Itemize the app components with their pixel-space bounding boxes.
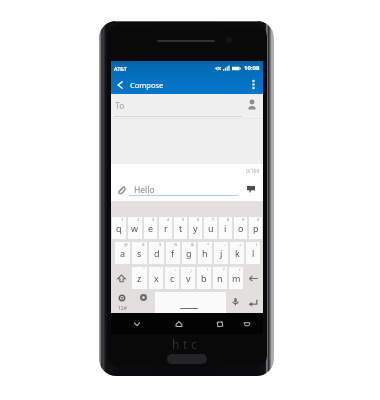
staticText: &	[191, 242, 194, 247]
staticText: w	[131, 222, 139, 234]
staticText: f	[171, 247, 175, 259]
staticText: -	[224, 242, 226, 247]
staticText: m	[232, 272, 241, 284]
button[interactable]: Hide keyboard	[238, 313, 256, 334]
staticText: *	[207, 242, 210, 247]
staticText: q	[116, 222, 122, 234]
staticText: Hello	[134, 184, 155, 196]
button[interactable]: e	[144, 217, 157, 239]
staticText: n	[217, 272, 223, 284]
staticText: 1	[121, 217, 124, 222]
staticText: 2	[137, 217, 140, 222]
staticText: c	[170, 272, 175, 284]
button[interactable]: f	[166, 242, 180, 264]
button[interactable]: Send message	[243, 181, 259, 197]
staticText: /	[239, 267, 241, 272]
staticText: +	[239, 242, 242, 247]
staticText: '	[160, 267, 161, 272]
button[interactable]: r	[159, 217, 172, 239]
staticText: 5	[182, 217, 185, 222]
button[interactable]: Settings	[134, 292, 153, 313]
staticText: "	[143, 267, 145, 272]
button[interactable]: t	[174, 217, 187, 239]
staticText: z	[137, 272, 142, 284]
staticText: 4	[167, 217, 170, 222]
staticText: 6	[197, 217, 200, 222]
button[interactable]: o	[234, 217, 247, 239]
staticText: :	[175, 267, 177, 272]
button[interactable]: Backspace	[245, 267, 262, 289]
staticText: u	[208, 222, 214, 234]
staticText: ?	[223, 267, 225, 272]
button[interactable]: c	[165, 267, 179, 289]
button[interactable]: Home button	[167, 354, 207, 364]
button[interactable]: y	[189, 217, 202, 239]
button[interactable]: j	[214, 242, 228, 264]
staticText: #	[142, 242, 145, 247]
staticText: To	[115, 100, 125, 112]
staticText: AT&T	[114, 65, 127, 72]
button[interactable]: q	[112, 217, 126, 239]
staticText: 8	[227, 217, 230, 222]
button[interactable]: Hide keyboard (back)	[128, 313, 146, 334]
staticText: p	[253, 222, 259, 234]
button[interactable]: v	[181, 267, 195, 289]
staticText: r	[164, 222, 168, 234]
staticText: $	[159, 242, 162, 247]
staticText: (	[256, 242, 258, 247]
button[interactable]: l	[246, 242, 260, 264]
staticText: @	[124, 242, 128, 247]
button[interactable]: d	[149, 242, 164, 264]
staticText: 9	[242, 217, 245, 222]
button[interactable]: k	[230, 242, 244, 264]
staticText: %	[174, 242, 178, 247]
button[interactable]: i	[219, 217, 232, 239]
button[interactable]: Shift	[112, 267, 130, 289]
button[interactable]: g	[182, 242, 196, 264]
staticText: l	[252, 247, 255, 259]
staticText: ;	[191, 267, 193, 272]
button[interactable]: m	[229, 267, 243, 289]
button[interactable]: h	[198, 242, 212, 264]
button[interactable]: a	[115, 242, 130, 264]
staticText: 3	[152, 217, 155, 222]
button[interactable]: Recent apps	[211, 313, 229, 334]
staticText: 7	[212, 217, 215, 222]
staticText: htc	[172, 336, 201, 352]
button[interactable]: Voice input	[228, 292, 242, 313]
button[interactable]: To	[111, 94, 263, 164]
staticText: t	[179, 222, 183, 234]
button[interactable]: Enter	[244, 292, 262, 313]
button[interactable]: z	[132, 267, 147, 289]
button[interactable]: Pick contact	[244, 96, 260, 112]
button[interactable]: w	[128, 217, 142, 239]
staticText: b	[201, 272, 207, 284]
staticText: !	[207, 267, 209, 272]
staticText: v	[186, 272, 191, 284]
staticText: i	[224, 222, 227, 234]
staticText: s	[137, 247, 142, 259]
staticText: e	[148, 222, 154, 234]
button[interactable]: Back	[111, 75, 128, 94]
staticText: 0	[257, 217, 260, 222]
button[interactable]: Attach file	[114, 183, 128, 197]
button[interactable]: b	[197, 267, 211, 289]
button[interactable]: x	[149, 267, 163, 289]
staticText: o	[238, 222, 244, 234]
staticText: j	[220, 247, 223, 259]
button[interactable]: Symbols and emoji	[112, 292, 132, 313]
staticText: g	[186, 247, 192, 259]
button[interactable]: u	[204, 217, 217, 239]
button[interactable]: More options	[243, 75, 263, 94]
staticText: a	[120, 247, 126, 259]
button[interactable]: Space	[155, 292, 226, 313]
staticText: 10:08	[244, 64, 260, 72]
button[interactable]: Home	[170, 313, 188, 334]
staticText: x	[154, 272, 159, 284]
staticText: 0/160	[246, 168, 260, 175]
staticText: k	[235, 247, 240, 259]
button[interactable]: n	[213, 267, 227, 289]
button[interactable]: s	[132, 242, 147, 264]
button[interactable]: p	[249, 217, 262, 239]
staticText: h	[202, 247, 208, 259]
